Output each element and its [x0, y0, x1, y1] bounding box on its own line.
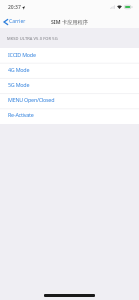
- staticText: 20:37: [8, 4, 21, 11]
- staticText: ICCID Mode: [8, 51, 36, 58]
- button[interactable]: Re-Activate: [0, 108, 139, 123]
- staticText: MKSD ULTRA V5.0 FOR 5G: [7, 36, 58, 41]
- staticText: Carrier: [9, 18, 26, 25]
- staticText: Re-Activate: [8, 111, 34, 118]
- staticText: SIM 卡应用程序: [51, 18, 88, 25]
- button[interactable]: MENU Open/Closed: [0, 93, 139, 108]
- staticText: MENU Open/Closed: [8, 96, 55, 103]
- button[interactable]: 4G Mode: [0, 63, 139, 78]
- button[interactable]: Back to Carrier: [3, 18, 26, 25]
- button[interactable]: 5G Mode: [0, 78, 139, 93]
- staticText: 5G Mode: [8, 81, 30, 88]
- button[interactable]: ICCID Mode: [0, 48, 139, 63]
- staticText: 4G Mode: [8, 66, 30, 73]
